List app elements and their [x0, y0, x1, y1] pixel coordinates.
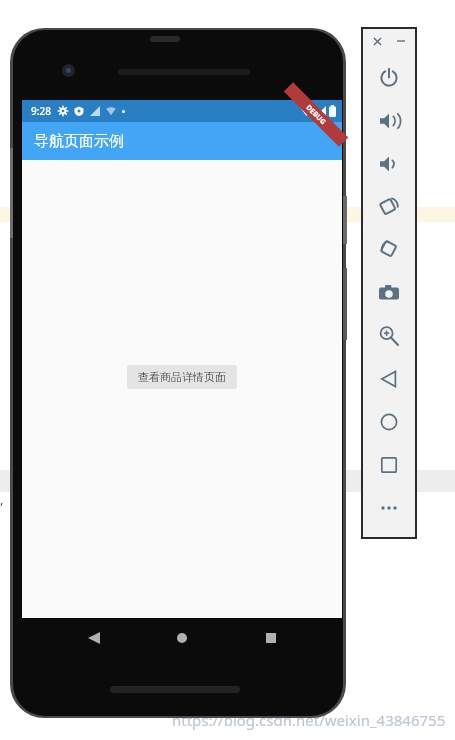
button[interactable]: Power [362, 56, 416, 99]
button[interactable]: Recent apps [254, 621, 288, 655]
button[interactable]: Close [370, 34, 384, 48]
staticText: 查看商品详情页面 [138, 370, 226, 384]
button[interactable]: Home [165, 621, 199, 655]
button[interactable]: Home [362, 400, 416, 443]
button[interactable]: Back [362, 357, 416, 400]
button[interactable]: Screenshot [362, 271, 416, 314]
button[interactable]: Volume down [362, 142, 416, 185]
staticText: ” [0, 498, 3, 516]
button[interactable]: More [362, 486, 416, 529]
button[interactable]: Overview [362, 443, 416, 486]
button[interactable]: Back [77, 621, 111, 655]
button[interactable]: Volume up [362, 99, 416, 142]
button[interactable]: Rotate left [362, 185, 416, 228]
staticText: https://blog.csdn.net/weixin_43846755 [172, 710, 446, 730]
button[interactable]: 查看商品详情页面 [127, 365, 237, 389]
staticText: 导航页面示例 [34, 132, 124, 151]
button[interactable]: Minimize [394, 34, 408, 48]
button[interactable]: Rotate right [362, 228, 416, 271]
staticText: 9:28 [31, 104, 51, 118]
button[interactable]: Zoom [362, 314, 416, 357]
staticText: DEBUG [304, 103, 328, 127]
